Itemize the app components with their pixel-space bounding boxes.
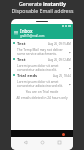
button[interactable]: Attachment [68,51,71,54]
staticText: The Temp Mail may not deliver some servi… [17,48,67,55]
staticText: Disposable Email address [11,7,74,14]
button[interactable] [11,130,73,138]
staticText: Trial ends [17,73,38,79]
button[interactable]: Attachment [68,67,71,70]
staticText: Lorem ipsum dolor sit amet consectetur a… [17,80,67,87]
button[interactable]: Trial ends [11,71,73,87]
button[interactable]: Back [22,139,28,145]
button[interactable]: Menu [13,30,18,35]
staticText: Aug 25, 18:44 [53,74,71,78]
staticText: Aug 26, 09:12 AM [48,58,71,62]
button[interactable]: Recents [56,139,62,145]
staticText: Lorem ipsum dolor sit amet consectetur a… [17,64,67,71]
button[interactable]: Test [11,55,73,71]
staticText: You are on Trial mode [11,90,73,94]
staticText: Generate instantly [19,0,66,7]
staticText: Aug 26, 09:15 AM [48,42,71,46]
staticText: Inbox [20,28,33,34]
staticText: Test [17,41,26,47]
button[interactable]: Home [39,139,45,145]
staticText: Test [17,57,26,63]
button[interactable]: Test [11,39,73,55]
staticText: gn4h7k@mail.com [20,34,45,38]
button[interactable]: Attachment [68,83,71,86]
staticText: All emails deleted in 24 hours only [11,96,73,100]
